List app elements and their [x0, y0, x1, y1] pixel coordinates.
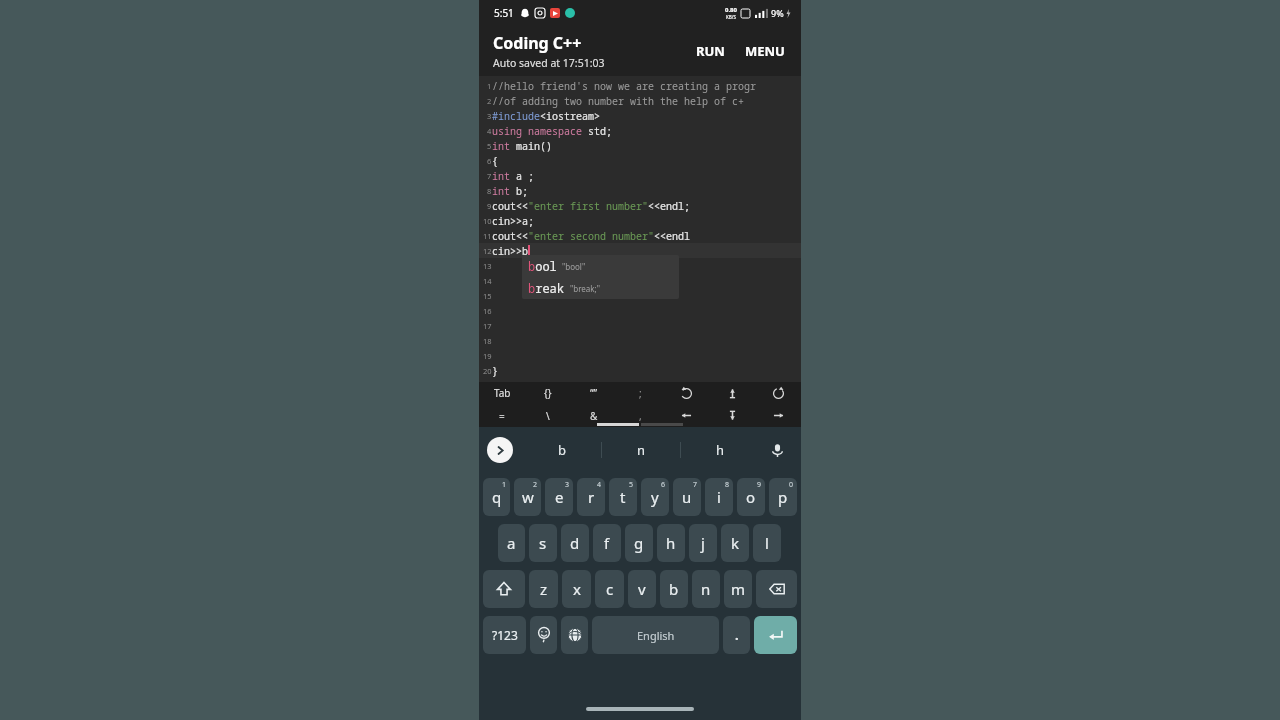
staticText: Coding C++ — [493, 32, 582, 54]
button[interactable]: Shift — [483, 570, 525, 608]
button[interactable]: h — [681, 427, 759, 473]
staticText: 2 — [487, 96, 492, 106]
button[interactable]: p — [769, 478, 797, 516]
staticText: i — [717, 487, 721, 507]
button[interactable]: Redo — [755, 382, 801, 404]
staticText: c — [606, 579, 614, 599]
staticText: cin>>a; — [492, 214, 534, 228]
staticText: MENU — [745, 42, 785, 60]
button[interactable]: x — [562, 570, 591, 608]
staticText: d — [570, 533, 580, 553]
staticText: e — [555, 487, 564, 507]
button[interactable]: Tab — [479, 382, 525, 404]
button[interactable]: u — [673, 478, 701, 516]
staticText: , — [639, 409, 642, 423]
button[interactable]: d — [561, 524, 589, 562]
button[interactable]: break — [522, 277, 679, 299]
button[interactable]: MENU — [739, 36, 791, 66]
staticText: #include<iostream> — [492, 109, 600, 123]
staticText: 18 — [483, 336, 492, 346]
button[interactable]: c — [595, 570, 624, 608]
staticText: } — [492, 364, 498, 378]
button[interactable]: ?123 — [483, 616, 526, 654]
button[interactable]: Move right — [755, 404, 801, 427]
button[interactable]: Emoji — [530, 616, 557, 654]
button[interactable]: t — [609, 478, 637, 516]
staticText: ; — [639, 386, 642, 400]
staticText: 12 — [483, 246, 492, 256]
staticText: b — [558, 441, 566, 459]
staticText: cout<<"enter second number"<<endl — [492, 229, 690, 243]
button[interactable]: Move up — [709, 382, 755, 404]
button[interactable]: b — [523, 427, 601, 473]
staticText: 8 — [487, 186, 492, 196]
button[interactable]: l — [753, 524, 781, 562]
button[interactable]: i — [705, 478, 733, 516]
button[interactable]: o — [737, 478, 765, 516]
button[interactable]: RUN — [690, 36, 731, 66]
button[interactable]: Backspace — [756, 570, 797, 608]
staticText: { — [492, 154, 498, 168]
button[interactable]: & — [571, 404, 617, 427]
staticText: 4 — [597, 480, 602, 490]
button[interactable]: {} — [525, 382, 571, 404]
button[interactable]: = — [479, 404, 525, 427]
staticText: cout<<"enter first number"<<endl; — [492, 199, 690, 213]
staticText: int a ; — [492, 169, 534, 183]
staticText: 1 — [502, 480, 507, 490]
staticText: x — [573, 579, 581, 599]
staticText: 13 — [483, 261, 492, 271]
button[interactable]: n — [602, 427, 680, 473]
staticText: = — [499, 409, 505, 423]
button[interactable]: e — [545, 478, 573, 516]
button[interactable]: , — [617, 404, 663, 427]
button[interactable]: Expand suggestions — [487, 437, 513, 463]
staticText: j — [701, 533, 705, 553]
button[interactable]: v — [628, 570, 656, 608]
button[interactable]: z — [529, 570, 558, 608]
button[interactable]: ; — [617, 382, 663, 404]
staticText: "bool" — [562, 261, 586, 272]
button[interactable]: f — [593, 524, 621, 562]
staticText: 14 — [483, 276, 492, 286]
button[interactable]: b — [660, 570, 688, 608]
staticText: ?123 — [492, 627, 518, 643]
button[interactable]: y — [641, 478, 669, 516]
button[interactable]: English — [592, 616, 719, 654]
button[interactable]: m — [724, 570, 752, 608]
button[interactable]: r — [577, 478, 605, 516]
button[interactable]: “” — [571, 382, 617, 404]
button[interactable]: s — [529, 524, 557, 562]
button[interactable]: . — [723, 616, 750, 654]
staticText: 3 — [487, 111, 492, 121]
staticText: "break;" — [570, 283, 601, 294]
staticText: p — [778, 487, 788, 507]
button[interactable]: \ — [525, 404, 571, 427]
button[interactable]: k — [721, 524, 749, 562]
button[interactable]: n — [692, 570, 720, 608]
staticText: u — [682, 487, 692, 507]
staticText: Tab — [494, 386, 511, 400]
button[interactable]: Enter — [754, 616, 797, 654]
staticText: 6 — [487, 156, 492, 166]
button[interactable]: Change language — [561, 616, 588, 654]
button[interactable]: Move left — [663, 404, 709, 427]
button[interactable]: j — [689, 524, 717, 562]
staticText: 9 — [757, 480, 762, 490]
button[interactable]: Move down — [709, 404, 755, 427]
button[interactable]: g — [625, 524, 653, 562]
button[interactable]: 1 — [479, 76, 801, 382]
staticText: 5 — [487, 141, 492, 151]
button[interactable]: a — [498, 524, 525, 562]
staticText: h — [716, 441, 725, 459]
staticText: 7 — [693, 480, 698, 490]
staticText: 5 — [629, 480, 634, 490]
button[interactable]: Voice input — [759, 427, 795, 473]
button[interactable]: Undo — [663, 382, 709, 404]
staticText: & — [590, 409, 598, 423]
staticText: k — [731, 533, 740, 553]
button[interactable]: bool — [522, 255, 679, 277]
button[interactable]: h — [657, 524, 685, 562]
button[interactable]: w — [514, 478, 541, 516]
button[interactable]: q — [483, 478, 510, 516]
